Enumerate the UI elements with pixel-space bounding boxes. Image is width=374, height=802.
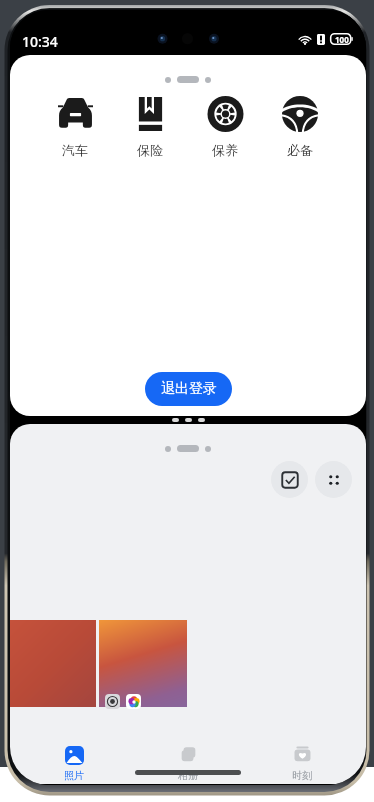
- staticText: 时刻: [292, 769, 312, 782]
- staticText: 必备: [287, 142, 313, 158]
- staticText: 10:34: [22, 32, 58, 51]
- button[interactable]: Photo 1: [10, 620, 96, 707]
- button[interactable]: 必备: [269, 89, 331, 161]
- button[interactable]: 时刻: [252, 740, 352, 782]
- staticText: 照片: [64, 769, 84, 782]
- staticText: 保养: [212, 142, 238, 158]
- button[interactable]: More options: [315, 461, 352, 498]
- button[interactable]: 汽车: [44, 89, 106, 161]
- button[interactable]: Photo 2: [99, 620, 187, 707]
- staticText: 相册: [178, 769, 198, 782]
- button[interactable]: 保养: [194, 89, 256, 161]
- staticText: 100: [335, 34, 349, 45]
- button[interactable]: 相册: [138, 740, 238, 782]
- button[interactable]: 照片: [24, 740, 124, 782]
- button[interactable]: 保险: [119, 89, 181, 161]
- staticText: 汽车: [62, 142, 88, 158]
- staticText: 保险: [137, 142, 163, 158]
- button[interactable]: Select items: [271, 461, 308, 498]
- button[interactable]: 退出登录: [145, 372, 232, 406]
- staticText: 退出登录: [161, 380, 217, 398]
